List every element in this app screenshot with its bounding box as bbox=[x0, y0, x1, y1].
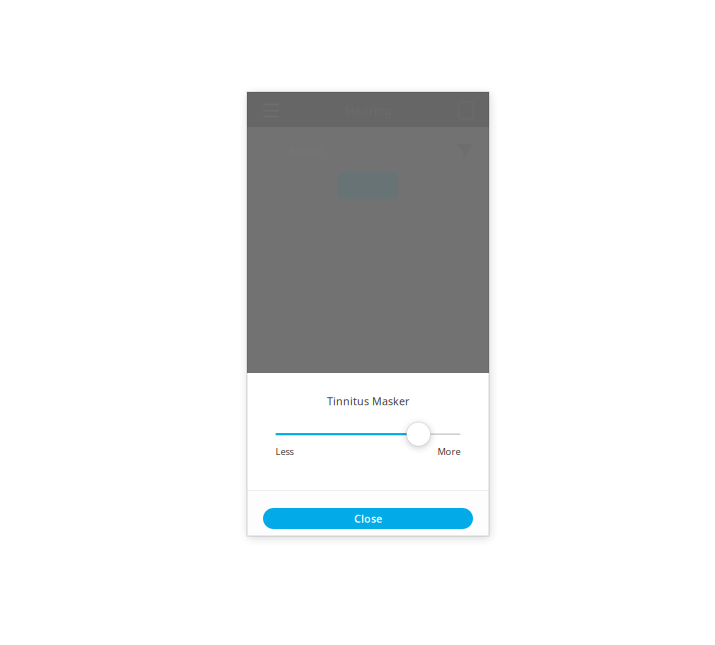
staticText: More bbox=[437, 445, 460, 458]
staticText: Less bbox=[275, 445, 293, 458]
button[interactable]: Close bbox=[263, 508, 473, 529]
staticText: Close bbox=[354, 511, 382, 526]
staticText: Tinnitus Masker bbox=[327, 394, 409, 408]
button[interactable]: Masker level bbox=[275, 423, 460, 458]
